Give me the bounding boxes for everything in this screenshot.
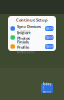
staticText: Open [45,27,53,30]
button[interactable]: Open [45,35,53,40]
staticText: Today [42,82,50,86]
button[interactable]: Open [45,44,53,49]
button[interactable]: Open [45,26,53,31]
staticText: Continue Setup [16,17,48,23]
staticText: Finish Profile [17,39,29,50]
staticText: Open [45,45,53,48]
staticText: 2 waiting [17,30,30,33]
staticText: Import Photos [17,30,31,41]
staticText: Sync Devices [17,24,41,29]
staticText: Almost done [17,50,35,54]
staticText: 12 items [17,41,29,45]
staticText: 3 events [42,86,50,94]
button[interactable]: Today [41,83,53,93]
staticText: Open [45,36,53,39]
